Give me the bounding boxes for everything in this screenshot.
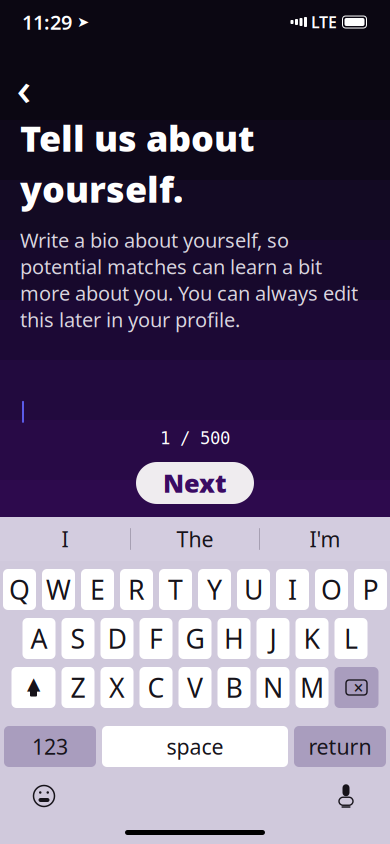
button[interactable]: Dictation <box>324 776 368 816</box>
button[interactable]: R <box>120 569 153 610</box>
staticText: 123 <box>32 732 68 761</box>
staticText: N <box>263 670 283 705</box>
button[interactable]: X <box>100 667 133 708</box>
staticText: Write a bio about yourself, so potential… <box>20 227 358 333</box>
button[interactable]: P <box>354 569 387 610</box>
staticText: Z <box>70 670 85 705</box>
button[interactable]: I <box>276 569 309 610</box>
button[interactable]: B <box>217 667 250 708</box>
staticText: × <box>353 676 363 699</box>
staticText: M <box>300 670 324 705</box>
staticText: ➤ <box>77 14 89 30</box>
staticText: J <box>269 621 276 656</box>
button[interactable]: The <box>131 517 259 561</box>
staticText: ‹ <box>16 58 31 118</box>
button[interactable]: Next <box>136 462 254 504</box>
button[interactable]: A <box>22 618 55 659</box>
button[interactable]: J <box>256 618 289 659</box>
staticText: R <box>128 572 145 607</box>
staticText: Q <box>9 572 30 607</box>
button[interactable]: L <box>334 618 367 659</box>
button[interactable]: U <box>237 569 270 610</box>
staticText: V <box>187 670 203 705</box>
staticText: I <box>61 525 68 553</box>
staticText: 1 / 500 <box>160 428 230 448</box>
button[interactable]: W <box>42 569 75 610</box>
button[interactable]: space <box>102 726 288 767</box>
button[interactable]: 123 <box>4 726 96 767</box>
button[interactable]: K <box>295 618 328 659</box>
staticText: F <box>149 621 163 656</box>
staticText: The <box>176 525 213 553</box>
button[interactable]: Delete <box>334 667 378 708</box>
staticText: LTE <box>311 11 337 33</box>
button[interactable]: Z <box>61 667 94 708</box>
staticText: Y <box>207 572 222 607</box>
staticText: Next <box>163 466 227 500</box>
staticText: S <box>70 621 85 656</box>
staticText: X <box>109 670 125 705</box>
staticText: D <box>107 621 126 656</box>
button[interactable]: F <box>139 618 172 659</box>
staticText: H <box>224 621 244 656</box>
staticText: ▲ <box>27 674 40 693</box>
staticText: C <box>147 670 164 705</box>
staticText: G <box>185 621 204 656</box>
button[interactable]: I'm <box>260 517 390 561</box>
staticText: return <box>308 732 371 761</box>
staticText: space <box>166 732 223 761</box>
staticText: T <box>168 572 183 607</box>
staticText: P <box>362 572 378 607</box>
button[interactable]: Y <box>198 569 231 610</box>
staticText: K <box>303 621 320 656</box>
staticText: O <box>321 572 342 607</box>
staticText: I <box>288 572 297 607</box>
button[interactable]: Emoji <box>22 776 66 816</box>
staticText: E <box>90 572 105 607</box>
staticText: I'm <box>309 525 340 553</box>
button[interactable]: Q <box>3 569 36 610</box>
button[interactable]: D <box>100 618 133 659</box>
button[interactable]: return <box>294 726 386 767</box>
staticText: Tell us about <box>20 114 255 162</box>
staticText: W <box>46 572 71 607</box>
button[interactable]: I <box>0 517 130 561</box>
button[interactable]: M <box>295 667 328 708</box>
button[interactable]: S <box>61 618 94 659</box>
staticText: U <box>244 572 263 607</box>
staticText: 11:29 <box>22 9 72 35</box>
staticText: yourself. <box>20 165 183 213</box>
button[interactable]: G <box>178 618 211 659</box>
staticText: B <box>225 670 242 705</box>
button[interactable]: Back <box>4 68 44 108</box>
button[interactable]: O <box>315 569 348 610</box>
button[interactable]: V <box>178 667 211 708</box>
button[interactable]: C <box>139 667 172 708</box>
button[interactable]: T <box>159 569 192 610</box>
staticText: A <box>30 621 47 656</box>
button[interactable]: E <box>81 569 114 610</box>
button[interactable]: N <box>256 667 289 708</box>
button[interactable]: Shift <box>11 667 55 708</box>
staticText: L <box>344 621 358 656</box>
button[interactable]: H <box>217 618 250 659</box>
